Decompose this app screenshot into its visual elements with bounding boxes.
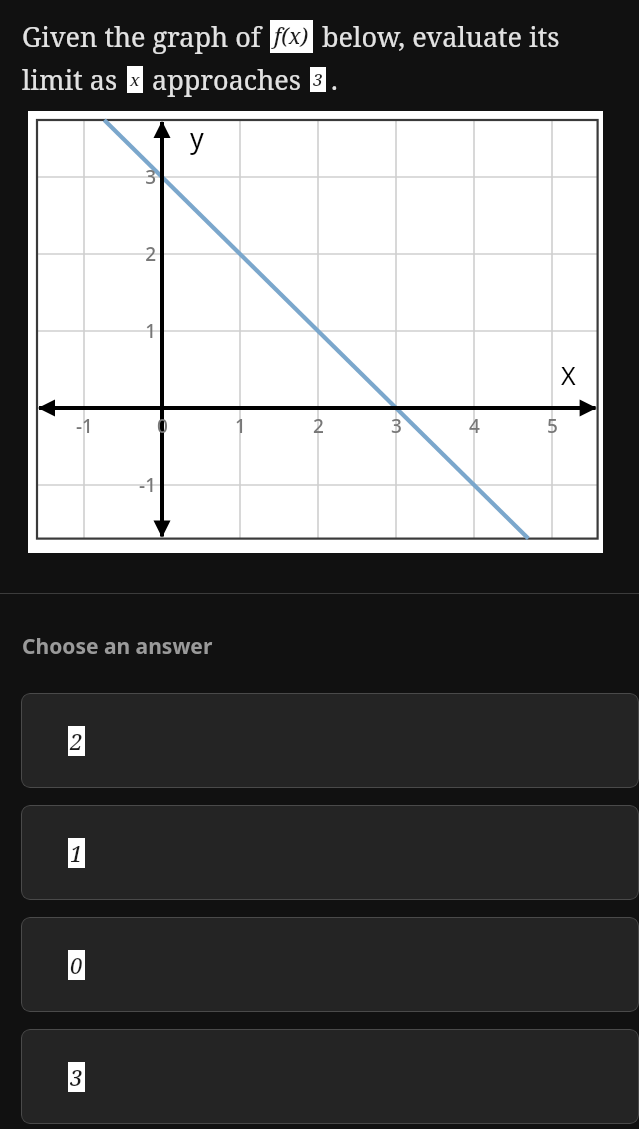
staticText: 1	[145, 318, 156, 344]
staticText: x	[130, 68, 140, 91]
staticText: 0	[157, 413, 168, 439]
staticText: 3	[145, 164, 156, 190]
staticText: 4	[469, 413, 480, 439]
staticText: 1	[235, 413, 246, 439]
staticText: X	[561, 358, 576, 392]
button[interactable]: 1	[21, 805, 639, 900]
button[interactable]: 3	[21, 1029, 639, 1124]
staticText: limit as	[22, 61, 118, 98]
staticText: 5	[547, 413, 558, 439]
staticText: Given the graph of	[22, 18, 261, 55]
staticText: .	[331, 61, 338, 98]
staticText: -1	[139, 472, 156, 498]
staticText: -1	[76, 413, 93, 439]
staticText: approaches	[152, 61, 301, 98]
staticText: Choose an answer	[22, 632, 213, 661]
staticText: f(x)	[274, 22, 309, 51]
staticText: below, evaluate its	[322, 18, 560, 55]
staticText: 2	[70, 726, 83, 756]
button[interactable]: 2	[21, 693, 639, 788]
staticText: 1	[70, 838, 83, 868]
staticText: 3	[313, 68, 323, 91]
staticText: 2	[313, 413, 324, 439]
staticText: 3	[391, 413, 402, 439]
staticText: 3	[70, 1062, 83, 1092]
staticText: 0	[70, 950, 83, 980]
staticText: y	[190, 119, 204, 156]
button[interactable]: 0	[21, 917, 639, 1012]
staticText: 2	[145, 241, 156, 267]
